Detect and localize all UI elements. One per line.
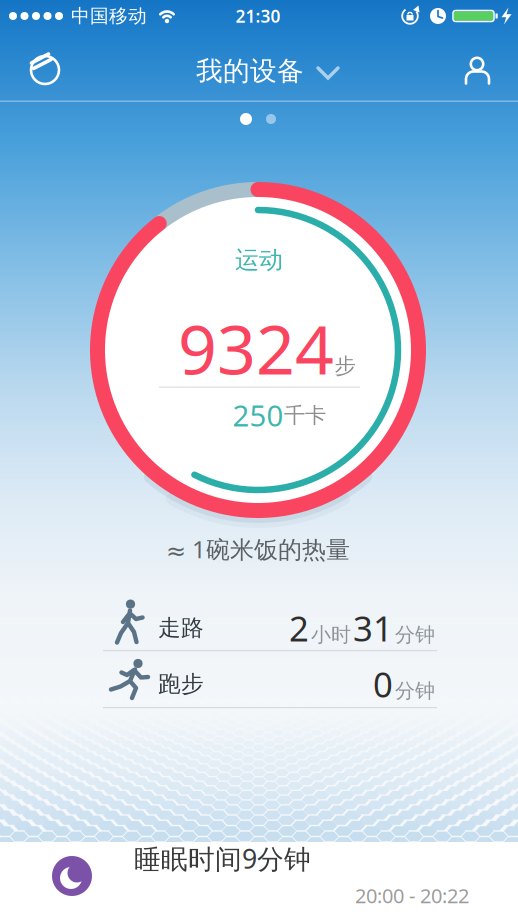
button[interactable] (17, 42, 73, 98)
staticText: 21:30 (235, 4, 280, 27)
button[interactable]: 我的设备 (187, 43, 347, 99)
staticText: 千卡 (284, 402, 326, 429)
staticText: 睡眠时间9分钟 (134, 841, 311, 876)
staticText: 走路 (158, 614, 204, 642)
staticText: 31 (353, 605, 393, 651)
staticText: 250 (232, 395, 283, 434)
staticText: 2 (289, 605, 309, 651)
staticText: 20:00 - 20:22 (355, 882, 469, 909)
staticText: ≈ 1碗米饭的热量 (166, 533, 350, 565)
staticText: 分钟 (395, 622, 435, 647)
button[interactable] (449, 44, 505, 94)
staticText: 分钟 (395, 678, 435, 703)
staticText: 运动 (235, 245, 283, 275)
button[interactable]: 跑步 (0, 654, 518, 710)
staticText: 步 (334, 353, 355, 379)
staticText: 小时 (311, 622, 351, 647)
button[interactable]: 走路 (0, 598, 518, 654)
staticText: 中国移动 (71, 4, 147, 27)
button[interactable]: 睡眠时间9分钟 (0, 842, 518, 920)
staticText: 9324 (178, 303, 334, 393)
staticText: 0 (373, 661, 393, 707)
staticText: 跑步 (158, 670, 204, 698)
staticText: 我的设备 (196, 55, 304, 87)
